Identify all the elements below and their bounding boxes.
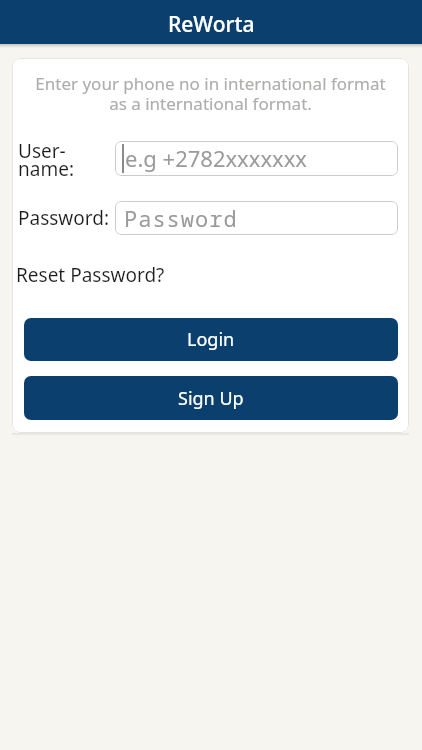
staticText: Sign Up <box>178 386 244 411</box>
button[interactable]: Reset Password? <box>16 262 165 288</box>
staticText: ReWorta <box>168 10 255 39</box>
button[interactable]: e.g +2782xxxxxxx <box>115 141 398 176</box>
staticText: User- name: <box>18 138 74 182</box>
staticText: Login <box>187 327 235 352</box>
staticText: Password <box>124 203 238 233</box>
staticText: Enter your phone no in international for… <box>12 72 409 115</box>
button[interactable]: Password <box>115 201 398 235</box>
button[interactable]: Login <box>24 318 398 361</box>
staticText: Password: <box>18 205 110 231</box>
staticText: e.g +2782xxxxxxx <box>125 143 307 173</box>
button[interactable]: Sign Up <box>24 376 398 420</box>
